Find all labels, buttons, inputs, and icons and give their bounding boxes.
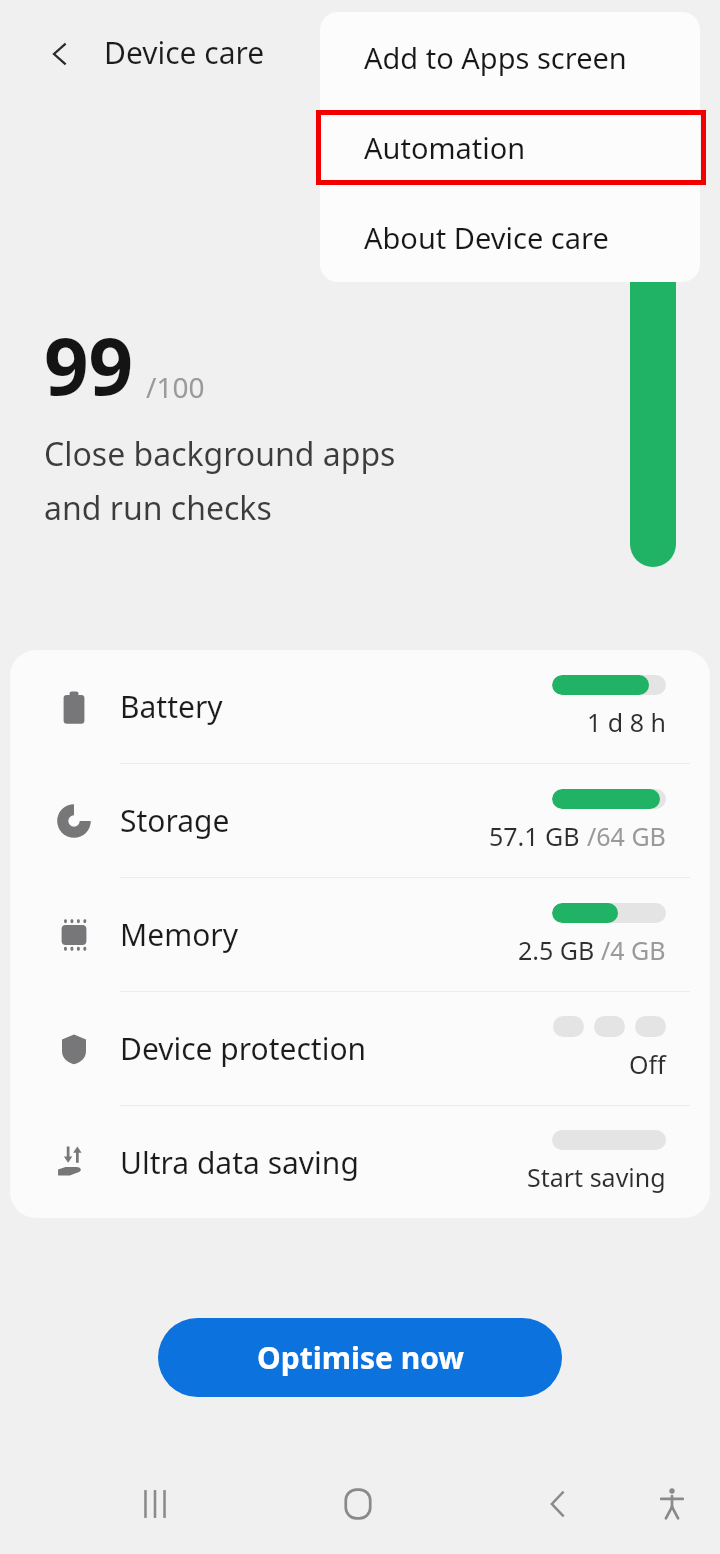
- button[interactable]: Ultra data saving: [10, 1106, 710, 1218]
- button[interactable]: Automation: [320, 102, 700, 192]
- button[interactable]: Memory: [10, 878, 710, 991]
- staticText: /64 GB: [587, 819, 666, 853]
- staticText: 57.1 GB: [489, 819, 587, 853]
- staticText: 2.5 GB: [518, 933, 601, 967]
- staticText: Ultra data saving: [120, 1142, 359, 1183]
- staticText: Memory: [120, 914, 239, 955]
- button[interactable]: Home: [318, 1464, 398, 1544]
- staticText: 99: [44, 312, 134, 418]
- staticText: Device care: [104, 32, 265, 73]
- staticText: Off: [629, 1047, 666, 1081]
- staticText: Add to Apps screen: [364, 38, 627, 77]
- staticText: Automation: [364, 128, 526, 167]
- button[interactable]: Battery: [10, 650, 710, 763]
- staticText: Battery: [120, 686, 223, 727]
- staticText: Start saving: [527, 1160, 666, 1194]
- button[interactable]: Storage: [10, 764, 710, 877]
- staticText: Optimise now: [257, 1337, 464, 1378]
- button[interactable]: Optimise now: [158, 1318, 562, 1397]
- staticText: Device protection: [120, 1028, 367, 1069]
- button[interactable]: Device protection: [10, 992, 710, 1105]
- staticText: /4 GB: [601, 933, 666, 967]
- button[interactable]: Recents: [115, 1464, 195, 1544]
- staticText: About Device care: [364, 218, 609, 257]
- button[interactable]: Accessibility: [632, 1464, 712, 1544]
- button[interactable]: About Device care: [320, 192, 700, 282]
- staticText: 1 d 8 h: [587, 705, 666, 739]
- staticText: Storage: [120, 800, 230, 841]
- button[interactable]: Add to Apps screen: [320, 12, 700, 102]
- staticText: /100: [146, 368, 205, 406]
- button[interactable]: Back: [518, 1464, 598, 1544]
- button[interactable]: Back: [36, 30, 84, 78]
- staticText: Close background apps and run checks: [44, 432, 584, 529]
